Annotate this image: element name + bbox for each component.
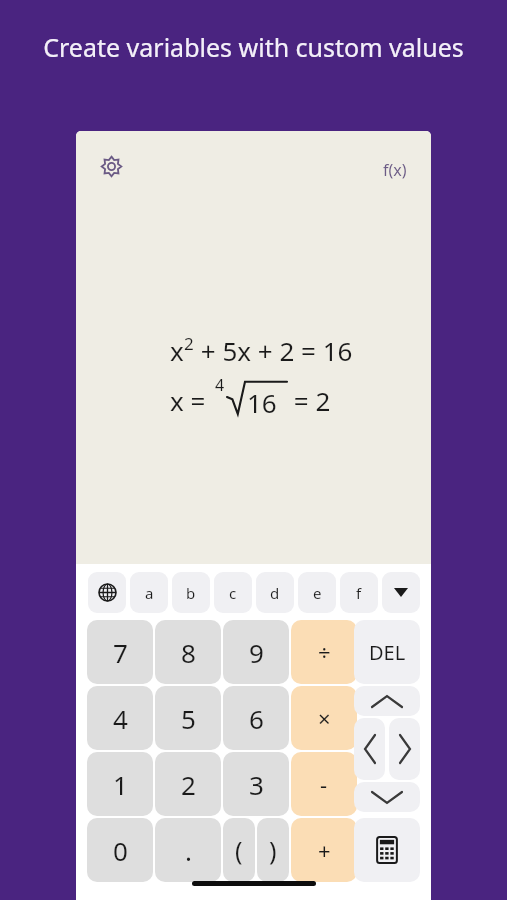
staticText: a [145, 583, 154, 603]
button[interactable]: b [172, 572, 210, 613]
staticText: ÷ [318, 637, 331, 667]
staticText: - [320, 769, 328, 799]
staticText: 7 [113, 635, 128, 670]
staticText: 4 [215, 374, 225, 396]
button[interactable]: Settings [93, 148, 129, 184]
button[interactable]: 5 [155, 686, 221, 750]
button[interactable]: 6 [223, 686, 289, 750]
staticText: b [186, 583, 196, 603]
button[interactable]: e [298, 572, 336, 613]
staticText: 2 [184, 332, 194, 355]
button[interactable]: ( [223, 818, 255, 882]
button[interactable]: More symbols [382, 572, 420, 613]
staticText: 3 [249, 767, 264, 802]
button[interactable]: - [291, 752, 357, 816]
button[interactable]: 4 [87, 686, 153, 750]
staticText: ) [269, 833, 277, 867]
staticText: + 5x + 2 = 16 [194, 333, 353, 368]
staticText: 8 [181, 635, 196, 670]
button[interactable]: 2 [155, 752, 221, 816]
button[interactable]: 8 [155, 620, 221, 684]
staticText: . [185, 833, 192, 868]
button[interactable]: DEL [354, 620, 420, 684]
staticText: 6 [249, 701, 264, 736]
button[interactable]: . [155, 818, 221, 882]
staticText: × [318, 703, 331, 733]
staticText: 1 [113, 767, 128, 802]
staticText: = 2 [287, 383, 331, 418]
button[interactable]: ÷ [291, 620, 357, 684]
staticText: x = [170, 383, 213, 418]
staticText: x [170, 333, 184, 368]
button[interactable]: 1 [87, 752, 153, 816]
staticText: f(x) [383, 159, 407, 181]
staticText: DEL [369, 639, 406, 666]
staticText: 16 [247, 385, 277, 420]
staticText: + [318, 835, 331, 865]
button[interactable]: Calculator [354, 818, 420, 882]
button[interactable]: Change language [88, 572, 126, 613]
button[interactable]: f(x) [383, 159, 407, 181]
staticText: e [313, 583, 322, 603]
button[interactable]: + [291, 818, 357, 882]
button[interactable]: 9 [223, 620, 289, 684]
button[interactable]: Move down [354, 782, 420, 812]
button[interactable]: Move up [354, 686, 420, 716]
staticText: f [356, 583, 362, 603]
staticText: 4 [113, 701, 128, 736]
button[interactable]: ) [257, 818, 289, 882]
button[interactable]: d [256, 572, 294, 613]
button[interactable]: × [291, 686, 357, 750]
staticText: ( [235, 833, 243, 867]
button[interactable]: a [130, 572, 168, 613]
button[interactable]: c [214, 572, 252, 613]
button[interactable]: Move right [389, 718, 420, 780]
staticText: Create variables with custom values [36, 30, 471, 64]
staticText: 2 [181, 767, 196, 802]
button[interactable]: Move left [354, 718, 385, 780]
staticText: 9 [249, 635, 264, 670]
staticText: d [270, 583, 280, 603]
staticText: 0 [113, 833, 128, 868]
staticText: 5 [181, 701, 196, 736]
button[interactable]: f [340, 572, 378, 613]
button[interactable]: 7 [87, 620, 153, 684]
button[interactable]: 3 [223, 752, 289, 816]
staticText: c [229, 583, 237, 603]
button[interactable]: 0 [87, 818, 153, 882]
